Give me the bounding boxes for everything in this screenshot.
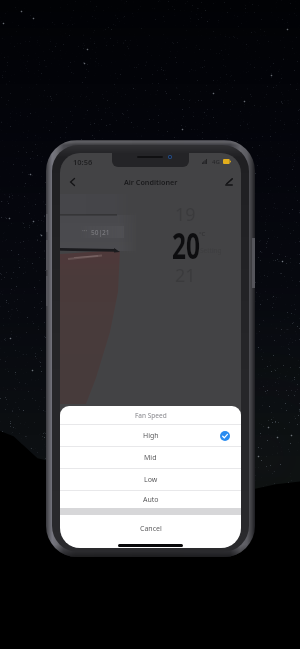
button[interactable]: Mid [60,447,241,468]
button[interactable]: Auto [60,491,241,508]
staticText: Fan Speed [135,411,167,420]
staticText: °C [199,230,206,238]
button[interactable]: Edit [219,172,239,192]
staticText: Auto [143,495,159,505]
staticText: 4G [212,158,220,166]
staticText: Mid [144,453,157,463]
button[interactable]: Cancel [60,515,241,548]
staticText: 10:56 [73,157,93,167]
button[interactable]: Low [60,469,241,490]
button[interactable]: High [60,425,241,446]
staticText: Low [144,475,158,485]
staticText: 50|21 [91,228,110,237]
button[interactable]: Back [62,172,82,192]
staticText: Cancel [140,524,162,534]
staticText: 20 [172,221,200,269]
staticText: ••• [82,228,88,234]
staticText: High [143,431,159,441]
staticText: Air Conditioner [124,177,178,187]
